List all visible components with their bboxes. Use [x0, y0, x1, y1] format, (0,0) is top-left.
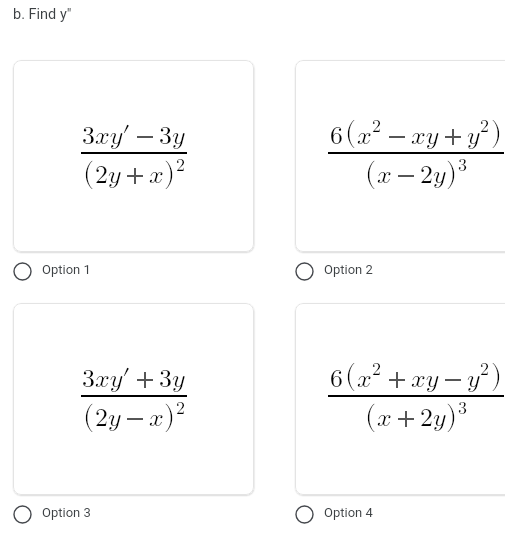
staticText: 𝑥	[149, 162, 164, 188]
staticText: Option 1	[42, 262, 91, 277]
staticText: 𝑥	[149, 405, 164, 431]
staticText: 3𝑥𝑦′	[82, 366, 131, 392]
staticText: 𝑦	[467, 123, 480, 149]
staticText: )	[491, 118, 502, 146]
staticText: (	[345, 118, 356, 146]
staticText: b. Find y"	[13, 6, 72, 23]
staticText: 2𝑦	[95, 162, 121, 188]
staticText: 2	[372, 360, 381, 378]
staticText: 2	[480, 360, 489, 378]
staticText: 3𝑦	[159, 366, 185, 392]
staticText: Option 2	[324, 262, 373, 277]
staticText: 2	[176, 399, 185, 417]
staticText: Option 3	[42, 505, 91, 520]
staticText: 2𝑦	[420, 405, 446, 431]
button[interactable]: 3𝑥𝑦′	[13, 303, 254, 495]
staticText: 𝑥	[377, 405, 392, 431]
staticText: )	[164, 159, 176, 188]
staticText: 3	[458, 399, 467, 417]
staticText: 3	[458, 156, 467, 174]
staticText: )	[446, 159, 458, 188]
staticText: 𝑥	[377, 162, 392, 188]
staticText: 2𝑦	[420, 162, 446, 188]
button[interactable]: 3𝑥𝑦′	[13, 60, 254, 252]
staticText: 2	[480, 117, 489, 135]
staticText: 2	[176, 156, 185, 174]
button[interactable]: 6	[295, 303, 505, 495]
button[interactable]: 6	[295, 60, 505, 252]
staticText: 𝑥	[357, 123, 372, 149]
staticText: )	[164, 402, 176, 431]
button[interactable]: Option 4	[295, 505, 373, 524]
button[interactable]: Option 3	[13, 505, 91, 524]
staticText: 𝑦	[467, 366, 480, 392]
staticText: 2	[372, 117, 381, 135]
staticText: )	[491, 361, 502, 389]
staticText: (	[365, 402, 377, 431]
staticText: 6	[330, 366, 343, 392]
staticText: 𝑥𝑦	[411, 123, 439, 149]
staticText: 𝑥	[357, 366, 372, 392]
staticText: (	[83, 159, 95, 188]
staticText: 3𝑦	[159, 123, 185, 149]
staticText: 6	[330, 123, 343, 149]
staticText: 𝑥𝑦	[411, 366, 439, 392]
staticText: Option 4	[324, 505, 373, 520]
button[interactable]: Option 2	[295, 262, 373, 281]
staticText: )	[446, 402, 458, 431]
button[interactable]: Option 1	[13, 262, 91, 281]
staticText: (	[83, 402, 95, 431]
staticText: (	[345, 361, 356, 389]
staticText: 3𝑥𝑦′	[82, 123, 131, 149]
staticText: 2𝑦	[95, 405, 121, 431]
staticText: (	[365, 159, 377, 188]
